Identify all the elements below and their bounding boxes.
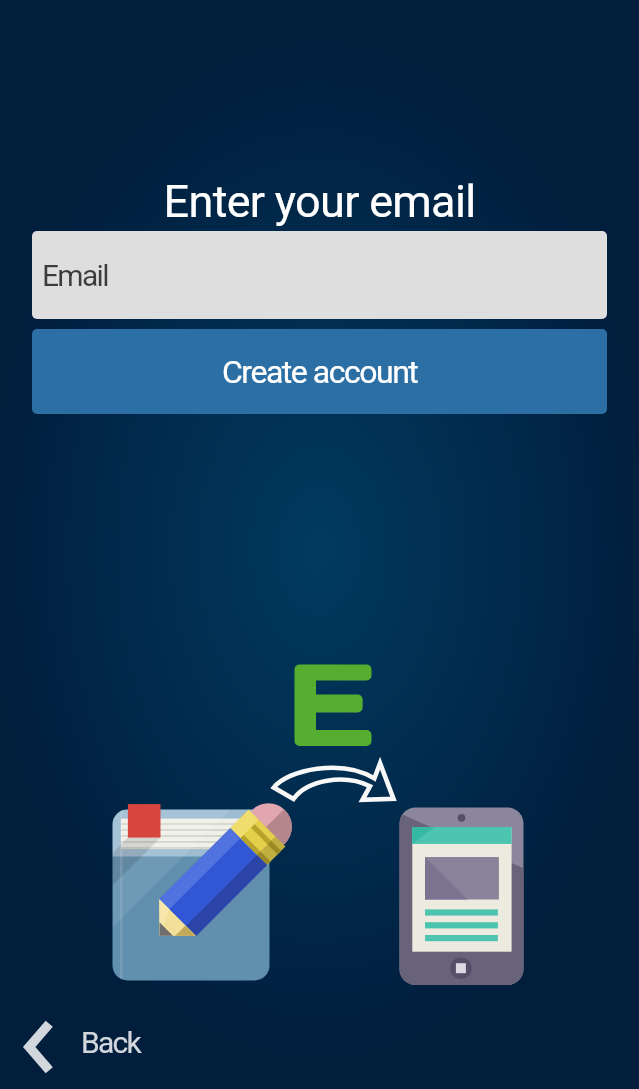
staticText: Create account <box>222 353 418 391</box>
button[interactable]: Email <box>32 231 607 319</box>
button[interactable]: Back <box>24 1019 140 1075</box>
staticText: Back <box>81 1025 140 1060</box>
other: Back <box>24 1019 54 1075</box>
staticText: Enter your email <box>0 175 639 228</box>
staticText: Email <box>42 258 108 293</box>
button[interactable]: Create account <box>32 329 607 414</box>
